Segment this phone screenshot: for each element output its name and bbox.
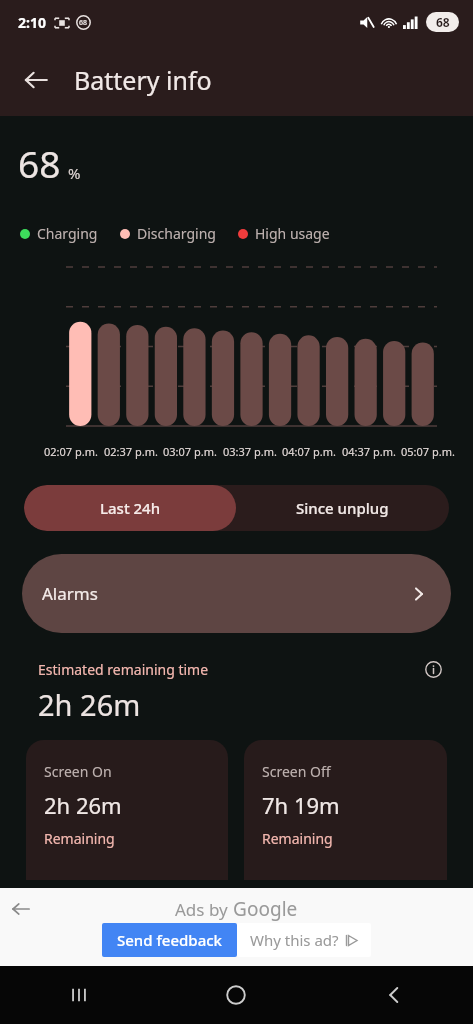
staticText: High usage <box>255 224 330 243</box>
button[interactable]: Screen Off <box>244 740 447 880</box>
staticText: 50% <box>44 346 68 347</box>
staticText: 25% <box>44 386 68 387</box>
staticText: 04:37 p.m. <box>342 444 396 459</box>
staticText: 03:37 p.m. <box>223 444 277 459</box>
staticText: 2:10 <box>18 13 46 32</box>
staticText: Screen On <box>44 762 112 781</box>
button[interactable]: Back <box>315 966 473 1024</box>
staticText: oogle <box>247 896 298 922</box>
button[interactable]: Send feedback <box>102 923 237 957</box>
staticText: 04:07 p.m. <box>282 444 336 459</box>
staticText: 03:07 p.m. <box>163 444 217 459</box>
staticText: 68 <box>436 14 450 30</box>
staticText: 02:07 p.m. <box>44 444 98 459</box>
staticText: Discharging <box>137 224 216 243</box>
staticText: Ads by <box>175 898 233 921</box>
staticText: Why this ad? <box>250 930 339 950</box>
button[interactable]: Alarms <box>22 554 451 633</box>
staticText: 0% <box>51 425 68 426</box>
staticText: 05:07 p.m. <box>401 444 455 459</box>
staticText: Remaining <box>262 829 333 848</box>
staticText: Battery info <box>74 63 212 97</box>
staticText: 68 <box>79 18 88 28</box>
button[interactable]: Recents <box>0 966 157 1024</box>
button[interactable]: Last 24h <box>24 485 236 531</box>
staticText: 2h 26m <box>44 790 122 820</box>
button[interactable]: Back <box>12 56 60 104</box>
button[interactable]: Why this ad? <box>237 923 371 957</box>
staticText: Since unplug <box>296 498 389 518</box>
staticText: % <box>68 163 81 183</box>
button[interactable]: Back <box>4 892 38 926</box>
button[interactable]: Info <box>419 655 447 683</box>
staticText: 2h 26m <box>38 685 141 724</box>
staticText: 75% <box>44 307 68 308</box>
staticText: Last 24h <box>100 498 161 518</box>
staticText: 68 <box>18 138 61 188</box>
button[interactable]: Screen On <box>26 740 228 880</box>
staticText: Screen Off <box>262 762 331 781</box>
staticText: 100% <box>37 267 68 268</box>
button[interactable]: Home <box>157 966 315 1024</box>
button[interactable]: Since unplug <box>236 485 449 531</box>
staticText: Remaining <box>44 829 115 848</box>
staticText: Alarms <box>42 582 98 605</box>
staticText: 7h 19m <box>262 790 340 820</box>
staticText: G <box>233 896 247 922</box>
staticText: Estimated remaining time <box>38 660 209 679</box>
staticText: 02:37 p.m. <box>104 444 158 459</box>
staticText: Send feedback <box>117 930 222 950</box>
staticText: Charging <box>37 224 98 243</box>
